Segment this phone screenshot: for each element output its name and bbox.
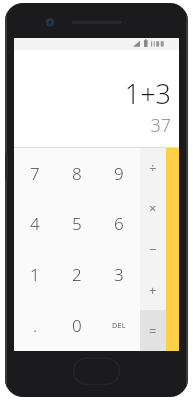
button[interactable]: 0 <box>56 300 98 351</box>
button[interactable]: Subtract <box>140 228 166 269</box>
staticText: 8 <box>72 162 82 185</box>
button[interactable]: 6 <box>98 198 140 249</box>
staticText: DEL <box>112 321 126 331</box>
staticText: 1 <box>30 263 40 286</box>
staticText: = <box>149 322 157 340</box>
button[interactable]: 1 <box>14 249 56 300</box>
button[interactable]: 7 <box>14 148 56 198</box>
button[interactable]: 5 <box>56 198 98 249</box>
staticText: 5 <box>72 212 82 235</box>
staticText: ÷ <box>149 159 157 177</box>
staticText: 1+3 <box>124 75 171 112</box>
staticText: 9 <box>114 162 124 185</box>
button[interactable]: Equals <box>140 310 166 351</box>
button[interactable]: . <box>14 300 56 351</box>
staticText: 37 <box>150 113 171 138</box>
button[interactable]: Multiply <box>140 188 166 228</box>
staticText: 7 <box>30 162 40 185</box>
staticText: − <box>149 240 157 258</box>
button[interactable]: DEL <box>98 300 140 351</box>
button[interactable]: Divide <box>140 148 166 188</box>
staticText: 2 <box>72 263 82 286</box>
staticText: . <box>33 314 38 337</box>
button[interactable]: 9 <box>98 148 140 198</box>
button[interactable]: Add <box>140 269 166 310</box>
staticText: 6 <box>114 212 124 235</box>
staticText: 3 <box>114 263 124 286</box>
staticText: 4 <box>30 212 40 235</box>
button[interactable]: 8 <box>56 148 98 198</box>
button[interactable]: 3 <box>98 249 140 300</box>
button[interactable]: 2 <box>56 249 98 300</box>
staticText: + <box>149 281 157 299</box>
staticText: 0 <box>72 314 82 337</box>
button[interactable]: 4 <box>14 198 56 249</box>
staticText: × <box>149 199 157 217</box>
